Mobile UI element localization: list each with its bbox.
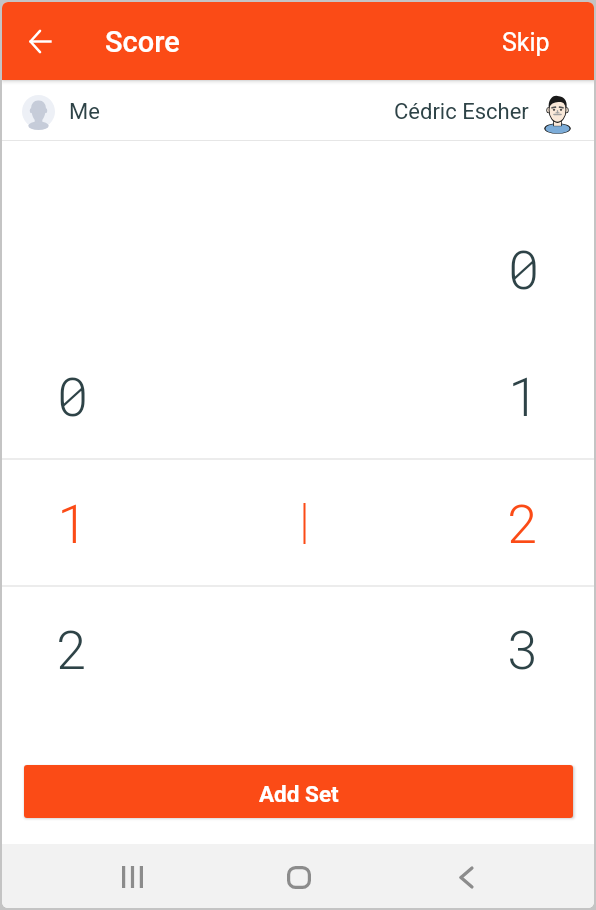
staticText: Skip <box>502 28 550 57</box>
button[interactable]: 0 <box>483 232 563 304</box>
staticText: Score <box>105 25 180 59</box>
button[interactable]: Me <box>22 95 55 128</box>
staticText: Add Set <box>259 781 339 807</box>
button[interactable]: Back <box>18 19 63 64</box>
staticText: 2 <box>507 487 540 558</box>
button[interactable]: Home <box>266 846 332 908</box>
button[interactable]: 3 <box>483 612 563 684</box>
button[interactable]: Skip <box>480 17 594 68</box>
button[interactable]: 1 <box>483 359 563 431</box>
button[interactable]: Back <box>433 846 499 908</box>
button[interactable]: 1 <box>32 486 112 558</box>
staticText: 3 <box>507 613 540 684</box>
staticText: 0 <box>507 233 540 304</box>
staticText: 1 <box>507 360 540 431</box>
staticText: 0 <box>56 360 89 431</box>
staticText: 2 <box>56 613 89 684</box>
staticText: Cédric Escher <box>394 99 529 125</box>
staticText: 1 <box>56 487 89 558</box>
button[interactable]: Add Set <box>24 765 573 818</box>
button[interactable]: 0 <box>32 359 112 431</box>
button[interactable]: Recent apps <box>99 846 165 908</box>
button[interactable]: 2 <box>483 486 563 558</box>
button[interactable]: 2 <box>32 612 112 684</box>
staticText: Me <box>69 99 100 125</box>
